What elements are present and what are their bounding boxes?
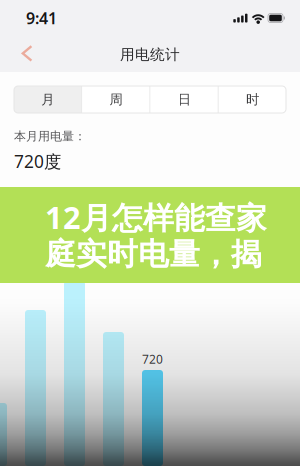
staticText: 月 (41, 91, 54, 108)
staticText: 9:41 (26, 7, 57, 29)
staticText: 12月怎样能查家 (45, 197, 267, 237)
button[interactable]: 周 (82, 86, 149, 113)
button[interactable]: Back (6, 31, 45, 70)
staticText: 用电统计 (120, 45, 180, 63)
staticText: 本月用电量： (14, 129, 86, 144)
staticText: 720度 (14, 150, 61, 173)
button[interactable]: 日 (150, 86, 218, 113)
staticText: 时 (246, 91, 259, 108)
staticText: 日 (178, 91, 191, 108)
button[interactable]: 时 (219, 86, 286, 113)
staticText: 周 (109, 91, 122, 108)
button[interactable]: 月 (14, 86, 81, 113)
staticText: 庭实时电量，揭 (45, 235, 262, 273)
staticText: 720 (142, 351, 163, 367)
